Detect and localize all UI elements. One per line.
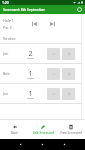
button[interactable]: View Scorecard [57, 120, 85, 139]
button[interactable]: Edit Scorecard [29, 120, 57, 139]
staticText: Bob [3, 71, 27, 76]
staticText: Hole 1 [3, 18, 14, 23]
button[interactable]: Increase Jen score [62, 88, 75, 100]
staticText: 1 [28, 88, 33, 98]
staticText: 1 [28, 68, 33, 78]
staticText: Back [11, 131, 18, 135]
staticText: 1:20 [2, 0, 9, 5]
staticText: Jim [3, 51, 27, 56]
staticText: Strokes [3, 36, 16, 41]
staticText: 2 [28, 48, 33, 58]
staticText: Scorecard: 8th September [3, 7, 45, 12]
button[interactable]: Next hole [48, 19, 57, 28]
button[interactable]: Increase Jim score [62, 48, 75, 60]
button[interactable]: Refresh [76, 6, 83, 13]
button[interactable]: Previous hole [30, 19, 39, 28]
staticText: View Scorecard [60, 131, 82, 135]
staticText: Edit Scorecard [33, 131, 54, 135]
button[interactable]: Back [0, 120, 29, 139]
button[interactable]: Increase Bob score [62, 68, 75, 80]
staticText: Par 3 [3, 25, 12, 30]
staticText: Jen [3, 91, 27, 96]
